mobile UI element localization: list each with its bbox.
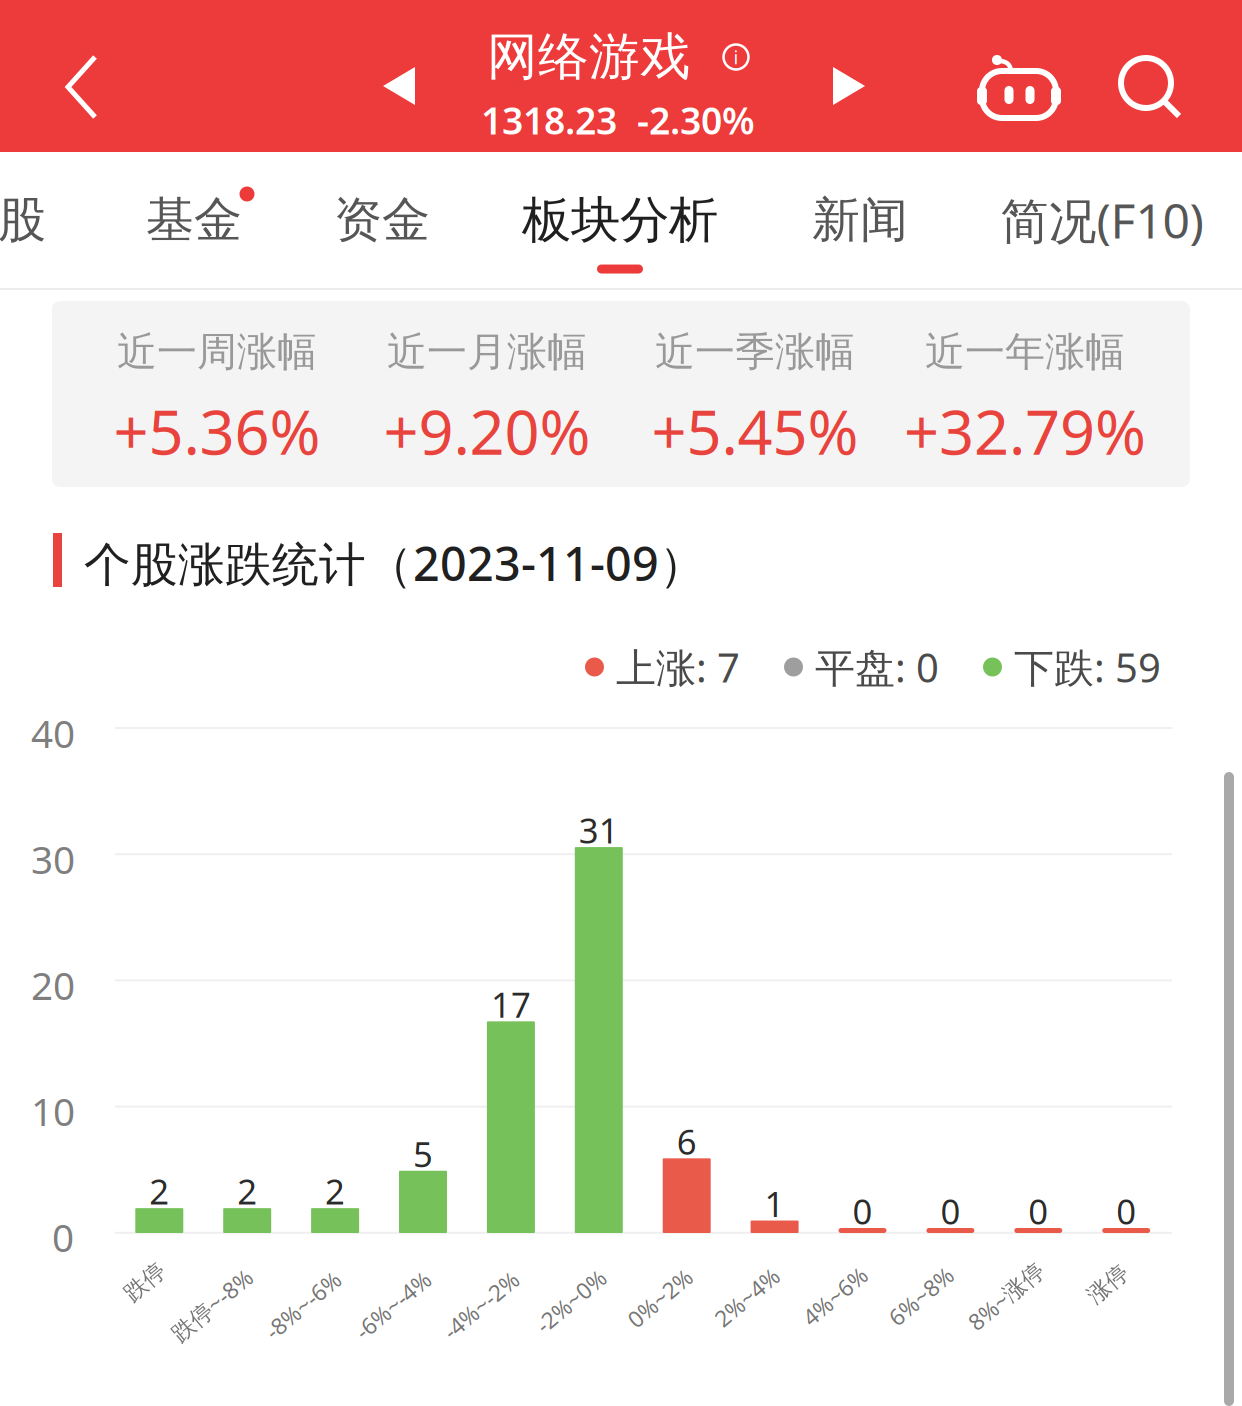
staticText: 股 — [0, 190, 46, 249]
staticText: 2 — [237, 1168, 257, 1214]
button[interactable]: Next sector — [833, 67, 865, 105]
staticText: 新闻 — [812, 190, 908, 249]
staticText: 资金 — [334, 190, 430, 249]
staticText: 6 — [677, 1118, 697, 1164]
staticText: 0 — [1116, 1188, 1136, 1234]
staticText: +5.45% — [651, 390, 858, 472]
staticText: 0%~2% — [621, 1283, 698, 1313]
staticText: +9.20% — [383, 390, 590, 472]
button[interactable]: 板块分析 — [522, 190, 718, 250]
staticText: +32.79% — [904, 390, 1146, 472]
button[interactable]: 基金 — [146, 190, 242, 249]
button[interactable]: 股 — [0, 190, 46, 249]
button[interactable]: Sector info — [722, 43, 750, 71]
staticText: 30 — [31, 833, 75, 885]
staticText: 上涨: 7 — [616, 640, 740, 693]
staticText: 下跌: 59 — [1014, 640, 1161, 693]
button[interactable]: Search — [1118, 55, 1182, 119]
staticText: 6%~8% — [882, 1281, 959, 1311]
staticText: 10 — [31, 1085, 75, 1137]
staticText: 0 — [940, 1188, 960, 1234]
staticText: 31 — [579, 807, 619, 853]
staticText: 1 — [765, 1180, 785, 1226]
button[interactable]: 新闻 — [812, 190, 908, 249]
staticText: +5.36% — [113, 390, 320, 472]
staticText: 0 — [52, 1211, 74, 1263]
staticText: 板块分析 — [522, 190, 718, 250]
staticText: 跌停~-8% — [163, 1290, 261, 1320]
staticText: 0 — [852, 1188, 872, 1234]
staticText: 1318.23 -2.30% — [481, 95, 755, 145]
staticText: i — [733, 45, 738, 69]
staticText: 20 — [31, 959, 75, 1011]
staticText: -2%~0% — [529, 1286, 613, 1316]
staticText: 8%~涨停 — [960, 1281, 1051, 1311]
staticText: -8%~-6% — [257, 1290, 348, 1320]
staticText: 跌停 — [122, 1268, 168, 1296]
button[interactable]: 简况(F10) — [1000, 188, 1203, 252]
button[interactable]: Previous sector — [383, 67, 415, 105]
staticText: 近一年涨幅 — [925, 327, 1125, 376]
button[interactable]: Assistant — [977, 53, 1061, 123]
staticText: 40 — [31, 707, 75, 759]
staticText: 2 — [149, 1168, 169, 1214]
staticText: 个股涨跌统计（2023-11-09） — [84, 532, 706, 594]
staticText: 基金 — [146, 190, 242, 249]
staticText: 2%~4% — [708, 1282, 785, 1312]
staticText: -6%~-4% — [347, 1290, 438, 1320]
staticText: 17 — [491, 981, 531, 1027]
staticText: 近一月涨幅 — [387, 327, 587, 376]
staticText: 5 — [413, 1131, 433, 1177]
staticText: -4%~-2% — [435, 1290, 526, 1320]
staticText: 近一季涨幅 — [655, 327, 855, 376]
staticText: 平盘: 0 — [815, 640, 939, 693]
staticText: 网络游戏 — [487, 26, 691, 88]
staticText: 2 — [325, 1168, 345, 1214]
staticText: 简况(F10) — [1000, 188, 1203, 252]
staticText: 0 — [1028, 1188, 1048, 1234]
staticText: 涨停 — [1085, 1270, 1131, 1298]
button[interactable]: Back — [65, 54, 99, 120]
button[interactable]: 资金 — [334, 190, 430, 249]
staticText: 4%~6% — [796, 1281, 873, 1311]
staticText: 近一周涨幅 — [117, 327, 317, 376]
